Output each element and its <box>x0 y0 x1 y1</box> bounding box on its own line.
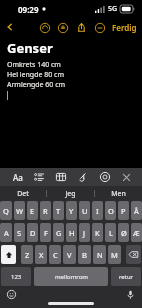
button[interactable]: S <box>14 223 25 242</box>
button[interactable]: Æ <box>131 223 142 242</box>
staticText: L <box>109 228 113 238</box>
button[interactable]: H <box>66 223 77 242</box>
button[interactable]: M <box>108 245 121 264</box>
button[interactable]: F <box>40 223 51 242</box>
staticText: B <box>82 250 87 260</box>
staticText: 5G <box>108 4 118 14</box>
button[interactable]: B <box>78 245 91 264</box>
button[interactable]: Backspace <box>126 245 141 264</box>
button[interactable]: Back <box>3 20 17 34</box>
button[interactable]: Close <box>119 168 134 186</box>
button[interactable]: Jeg <box>47 186 94 201</box>
button[interactable]: Text format <box>10 168 25 186</box>
button[interactable]: Share <box>74 20 88 34</box>
staticText: Y <box>69 206 74 216</box>
staticText: C <box>53 250 58 260</box>
staticText: I <box>96 206 99 216</box>
button[interactable]: Y <box>66 201 77 220</box>
button[interactable]: K <box>92 223 103 242</box>
staticText: Hel lengde 80 cm <box>7 70 64 80</box>
staticText: W <box>16 206 23 216</box>
staticText: F <box>44 228 48 238</box>
staticText: R <box>43 206 48 216</box>
button[interactable]: Z <box>21 245 33 264</box>
button[interactable]: Å <box>131 201 142 220</box>
staticText: Ferdig <box>112 22 137 33</box>
staticText: Armlengde 60 cm <box>7 80 66 90</box>
button[interactable]: Ferdig <box>110 21 139 34</box>
staticText: G <box>56 228 62 238</box>
staticText: 123 <box>11 273 22 281</box>
button[interactable]: Attach <box>75 168 90 186</box>
button[interactable]: O <box>105 201 116 220</box>
staticText: Q <box>3 206 9 216</box>
button[interactable]: J <box>79 223 90 242</box>
staticText: Jeg <box>65 189 76 199</box>
staticText: H <box>69 228 75 238</box>
button[interactable]: Emoji <box>6 289 17 300</box>
button[interactable]: W <box>14 201 25 220</box>
button[interactable]: I <box>92 201 103 220</box>
staticText: N <box>97 250 103 260</box>
staticText: Å <box>134 206 139 216</box>
button[interactable]: mellomrom <box>34 267 108 286</box>
button[interactable]: V <box>63 245 76 264</box>
button[interactable]: E <box>27 201 38 220</box>
staticText: Det <box>17 189 29 199</box>
button[interactable]: R <box>40 201 51 220</box>
button[interactable]: Checklist <box>31 168 46 186</box>
button[interactable]: Table <box>53 168 68 186</box>
staticText: 09:29 <box>18 4 39 15</box>
staticText: E <box>30 206 35 216</box>
staticText: Genser <box>7 39 53 57</box>
button[interactable]: A <box>0 223 12 242</box>
button[interactable]: P <box>118 201 129 220</box>
button[interactable]: Ø <box>118 223 129 242</box>
staticText: V <box>67 250 72 260</box>
staticText: U <box>82 206 88 216</box>
staticText: D <box>30 228 36 238</box>
staticText: T <box>56 206 61 216</box>
button[interactable]: Camera <box>97 168 112 186</box>
staticText: P <box>121 206 126 216</box>
staticText: Æ <box>133 228 140 238</box>
button[interactable]: N <box>93 245 106 264</box>
staticText: mellomrom <box>55 273 88 281</box>
staticText: O <box>108 206 114 216</box>
button[interactable]: C <box>49 245 61 264</box>
button[interactable]: Det <box>0 186 46 201</box>
staticText: Omkrets 140 cm <box>7 60 61 70</box>
button[interactable]: T <box>53 201 64 220</box>
button[interactable]: retur <box>111 267 141 286</box>
staticText: M <box>111 250 118 260</box>
staticText: retur <box>119 273 134 281</box>
button[interactable]: Dictate <box>125 289 136 300</box>
button[interactable]: Shift <box>1 245 16 264</box>
staticText: J <box>83 228 86 238</box>
button[interactable]: U <box>79 201 90 220</box>
staticText: Aa <box>13 172 23 183</box>
staticText: Z <box>25 250 30 260</box>
button[interactable]: Men <box>95 186 142 201</box>
button[interactable]: Q <box>0 201 12 220</box>
button[interactable]: 123 <box>1 267 31 286</box>
button[interactable]: More <box>93 21 106 34</box>
staticText: K <box>95 228 100 238</box>
button[interactable]: X <box>35 245 47 264</box>
staticText: S <box>17 228 22 238</box>
staticText: A <box>4 228 9 238</box>
staticText: Ø <box>121 228 127 238</box>
button[interactable]: Undo <box>38 21 51 34</box>
button[interactable]: D <box>27 223 38 242</box>
staticText: X <box>39 250 44 260</box>
staticText: Men <box>111 189 126 199</box>
button[interactable]: Markup <box>56 21 69 34</box>
button[interactable]: L <box>105 223 116 242</box>
button[interactable]: G <box>53 223 64 242</box>
